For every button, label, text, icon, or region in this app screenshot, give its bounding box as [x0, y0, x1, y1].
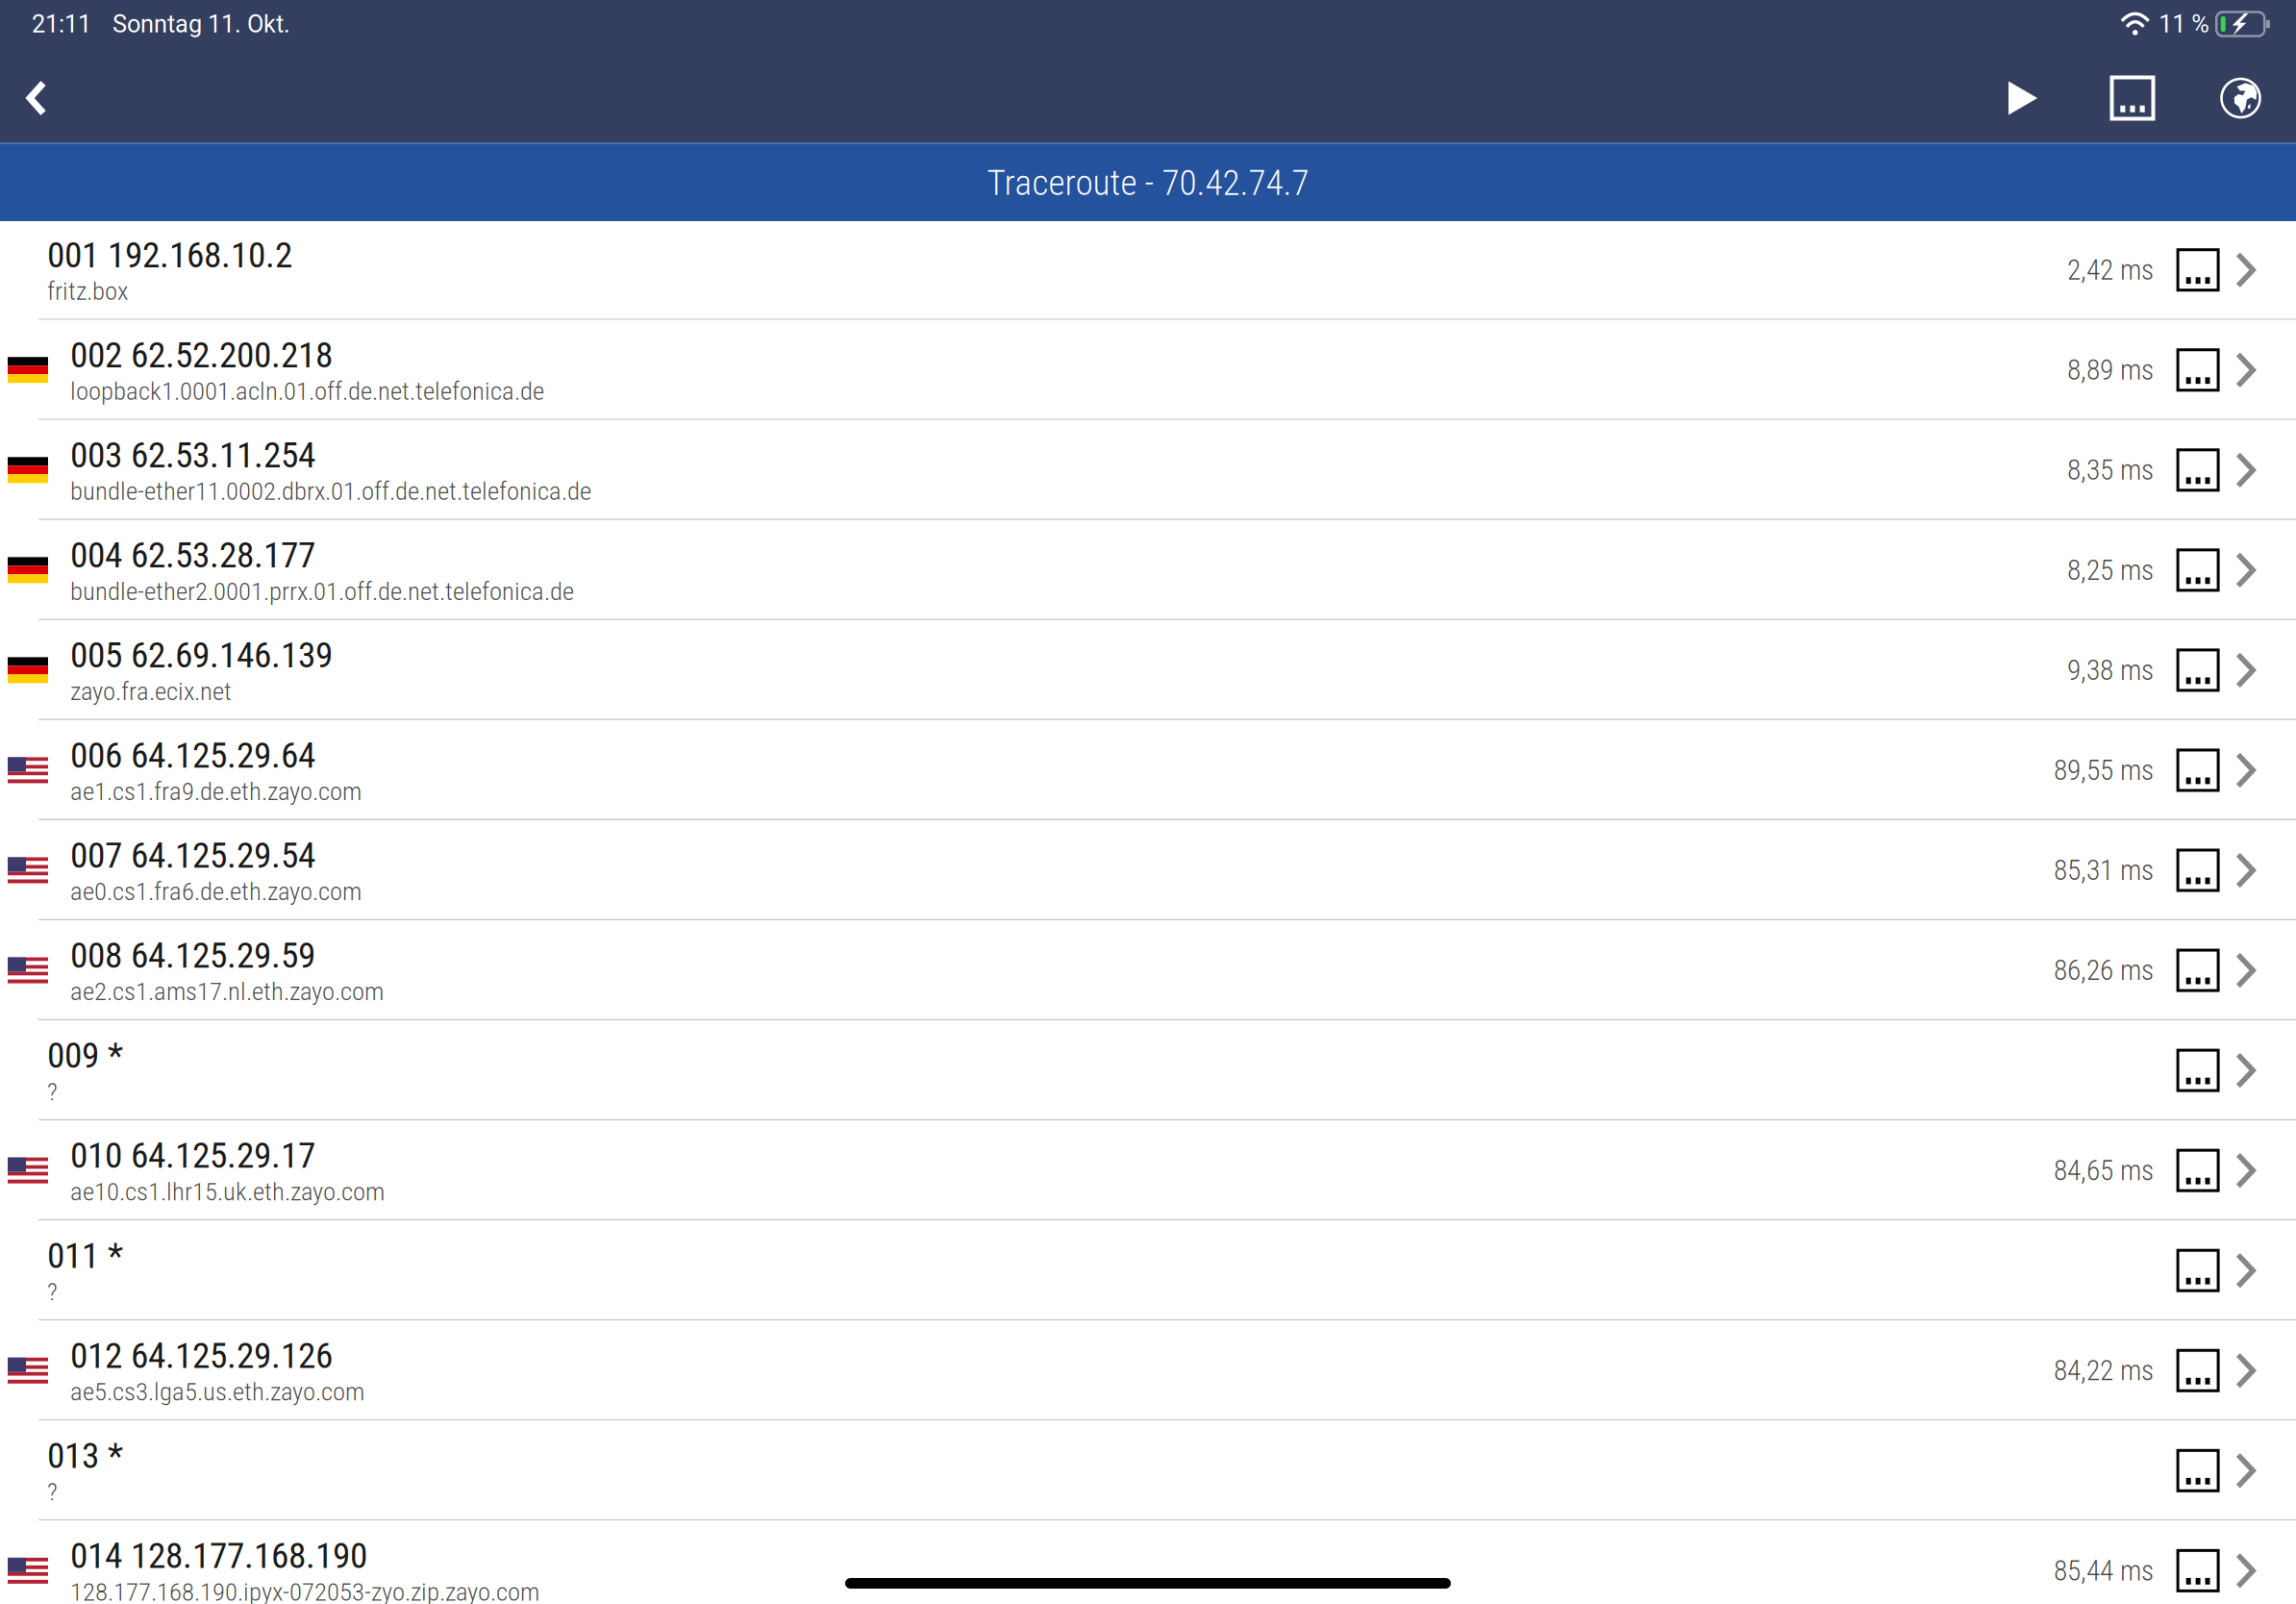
staticText: fritz.box [47, 276, 128, 306]
staticText: ? [47, 1076, 58, 1107]
staticText: zayo.fra.ecix.net [70, 676, 232, 706]
button[interactable]: 012 64.125.29.126 [0, 1322, 2296, 1422]
staticText: 8,25 ms [2067, 554, 2154, 587]
button[interactable]: 001 192.168.10.2 [0, 221, 2296, 321]
staticText: 9,38 ms [2067, 654, 2154, 687]
button[interactable]: 008 64.125.29.59 [0, 922, 2296, 1022]
staticText: bundle-ether11.0002.dbrx.01.off.de.net.t… [70, 476, 591, 506]
staticText: 8,89 ms [2067, 353, 2154, 387]
button[interactable]: Back [0, 54, 73, 142]
staticText: 008 64.125.29.59 [70, 934, 315, 976]
staticText: ae2.cs1.ams17.nl.eth.zayo.com [70, 976, 384, 1006]
staticText: loopback1.0001.acln.01.off.de.net.telefo… [70, 376, 544, 406]
staticText: bundle-ether2.0001.prrx.01.off.de.net.te… [70, 576, 574, 606]
button[interactable]: 005 62.69.146.139 [0, 621, 2296, 721]
button[interactable]: 003 62.53.11.254 [0, 421, 2296, 521]
staticText: ae1.cs1.fra9.de.eth.zayo.com [70, 776, 362, 806]
button[interactable]: More options [2080, 54, 2185, 142]
button[interactable]: 013 * [0, 1422, 2296, 1522]
staticText: ? [47, 1277, 58, 1307]
staticText: 004 62.53.28.177 [70, 534, 315, 576]
staticText: 86,26 ms [2054, 954, 2154, 987]
button[interactable]: 006 64.125.29.64 [0, 721, 2296, 821]
button[interactable]: 011 * [0, 1222, 2296, 1322]
staticText: ae10.cs1.lhr15.uk.eth.zayo.com [70, 1176, 385, 1207]
staticText: 85,31 ms [2054, 854, 2154, 887]
button[interactable]: 007 64.125.29.54 [0, 822, 2296, 922]
staticText: 002 62.52.200.218 [70, 334, 333, 376]
staticText: ae0.cs1.fra6.de.eth.zayo.com [70, 876, 362, 906]
staticText: 011 * [47, 1235, 123, 1277]
button[interactable]: 009 * [0, 1022, 2296, 1122]
staticText: 009 * [47, 1034, 123, 1076]
staticText: 128.177.168.190.ipyx-072053-zyo.zip.zayo… [70, 1577, 539, 1604]
button[interactable]: 002 62.52.200.218 [0, 321, 2296, 421]
staticText: 89,55 ms [2054, 754, 2154, 787]
staticText: 85,44 ms [2054, 1554, 2154, 1587]
staticText: 11 % [2159, 10, 2210, 38]
staticText: 84,22 ms [2054, 1354, 2154, 1387]
staticText: 014 128.177.168.190 [70, 1535, 367, 1577]
staticText: 007 64.125.29.54 [70, 834, 315, 876]
staticText: 2,42 ms [2067, 253, 2154, 286]
staticText: 84,65 ms [2054, 1154, 2154, 1187]
staticText: 006 64.125.29.64 [70, 734, 315, 776]
staticText: 003 62.53.11.254 [70, 434, 315, 476]
staticText: 8,35 ms [2067, 454, 2154, 487]
staticText: 005 62.69.146.139 [70, 634, 333, 676]
staticText: 012 64.125.29.126 [70, 1335, 333, 1377]
staticText: 001 192.168.10.2 [47, 234, 292, 276]
staticText: 013 * [47, 1435, 123, 1477]
staticText: Sonntag 11. Okt. [112, 10, 290, 38]
staticText: 21:11 [32, 10, 91, 38]
staticText: ? [47, 1477, 58, 1507]
button[interactable]: Map view [2185, 54, 2296, 142]
staticText: 010 64.125.29.17 [70, 1134, 315, 1176]
button[interactable]: 014 128.177.168.190 [0, 1522, 2296, 1604]
button[interactable]: 004 62.53.28.177 [0, 521, 2296, 621]
button[interactable]: 010 64.125.29.17 [0, 1122, 2296, 1222]
button[interactable]: Start traceroute [1966, 54, 2080, 142]
staticText: Traceroute - 70.42.74.7 [987, 162, 1309, 204]
staticText: ae5.cs3.lga5.us.eth.zayo.com [70, 1377, 364, 1407]
